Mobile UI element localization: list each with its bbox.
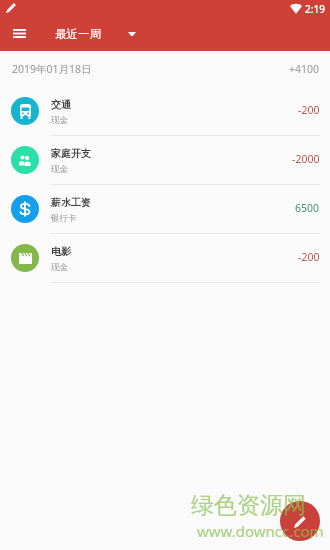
staticText: -2000 <box>292 152 320 166</box>
staticText: 交通 <box>51 98 71 111</box>
button[interactable]: 最近一周 <box>55 18 136 49</box>
staticText: 2019年01月18日 <box>12 62 92 76</box>
staticText: 现金 <box>51 262 68 273</box>
button[interactable]: Menu <box>0 18 38 49</box>
staticText: 2:19 <box>305 2 325 16</box>
staticText: 薪水工资 <box>51 196 91 209</box>
staticText: 6500 <box>295 201 320 215</box>
staticText: 家庭开支 <box>51 147 91 160</box>
staticText: 电影 <box>51 245 71 258</box>
button[interactable]: 薪水工资 <box>0 185 330 234</box>
button[interactable]: 电影 <box>0 234 330 283</box>
staticText: 绿色资源网 <box>191 491 306 520</box>
staticText: -200 <box>298 103 320 117</box>
staticText: 银行卡 <box>51 213 77 224</box>
staticText: 最近一周 <box>55 27 101 41</box>
button[interactable]: 交通 <box>0 87 330 136</box>
staticText: 现金 <box>51 164 68 175</box>
button[interactable]: 家庭开支 <box>0 136 330 185</box>
button[interactable]: Add record <box>280 501 320 541</box>
staticText: +4100 <box>289 62 320 76</box>
staticText: www.downcc.com <box>197 521 324 541</box>
staticText: 现金 <box>51 115 68 126</box>
staticText: -200 <box>298 250 320 264</box>
